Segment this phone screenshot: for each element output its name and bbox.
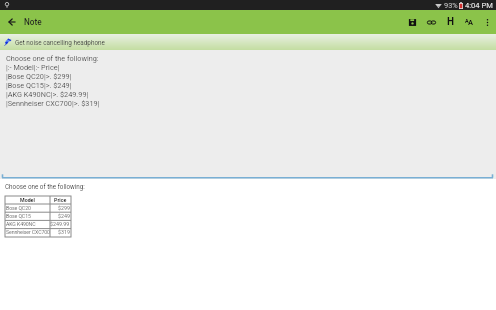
staticText: Note bbox=[24, 17, 42, 27]
staticText: Sennheiser CXC700 bbox=[6, 229, 50, 235]
staticText: 4:04 PM bbox=[465, 1, 493, 10]
staticText: AKG K490NC bbox=[6, 221, 36, 227]
staticText: |AKG K490NC|>. $249.99| bbox=[6, 90, 89, 99]
staticText: Choose one of the following: bbox=[5, 183, 85, 190]
staticText: $299 bbox=[58, 205, 70, 211]
staticText: 93% bbox=[444, 1, 458, 10]
button[interactable]: Save bbox=[403, 10, 422, 34]
staticText: $249 bbox=[58, 213, 70, 219]
staticText: |Bose QC15|>. $249| bbox=[6, 81, 72, 90]
button[interactable]: Text size bbox=[460, 10, 479, 34]
staticText: Choose one of the following: bbox=[6, 54, 99, 63]
button[interactable]: Get noise cancelling headphone bbox=[0, 34, 496, 50]
staticText: Model bbox=[20, 197, 35, 203]
staticText: A bbox=[468, 18, 474, 27]
staticText: |:- Model|:- Price| bbox=[6, 63, 60, 72]
staticText: Bose QC20 bbox=[6, 205, 31, 211]
staticText: |Bose QC20|>. $299| bbox=[6, 72, 72, 81]
staticText: Bose QC15 bbox=[6, 213, 31, 219]
button[interactable]: Back bbox=[0, 10, 24, 34]
staticText: Get noise cancelling headphone bbox=[15, 39, 105, 46]
staticText: |Sennheiser CXC700|>. $319| bbox=[6, 99, 100, 108]
button[interactable]: Link bbox=[422, 10, 441, 34]
staticText: H bbox=[447, 16, 455, 28]
button[interactable]: More options bbox=[479, 10, 496, 34]
staticText: A bbox=[465, 18, 469, 24]
staticText: $249.99 bbox=[50, 221, 70, 227]
button[interactable]: H bbox=[441, 10, 460, 34]
staticText: Price bbox=[54, 197, 67, 203]
staticText: $319 bbox=[58, 229, 70, 235]
